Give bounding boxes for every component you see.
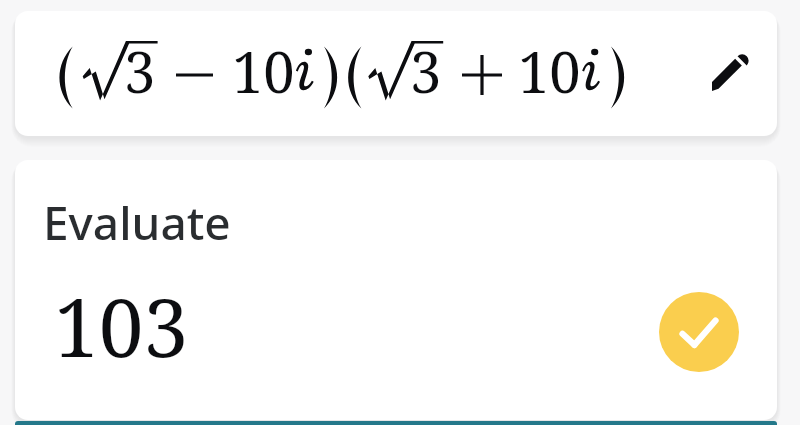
staticText: 3: [124, 33, 156, 109]
button[interactable]: Evaluate: [15, 160, 777, 420]
staticText: 3: [410, 33, 442, 109]
button[interactable]: Next step: [15, 421, 777, 425]
staticText: 10: [232, 33, 295, 109]
staticText: 10: [518, 33, 581, 109]
button[interactable]: Edit expression: [689, 33, 771, 115]
button[interactable]: Correct answer: [659, 292, 739, 372]
staticText: Evaluate: [43, 191, 231, 254]
staticText: 103: [54, 271, 189, 380]
button[interactable]: 3: [15, 11, 777, 136]
